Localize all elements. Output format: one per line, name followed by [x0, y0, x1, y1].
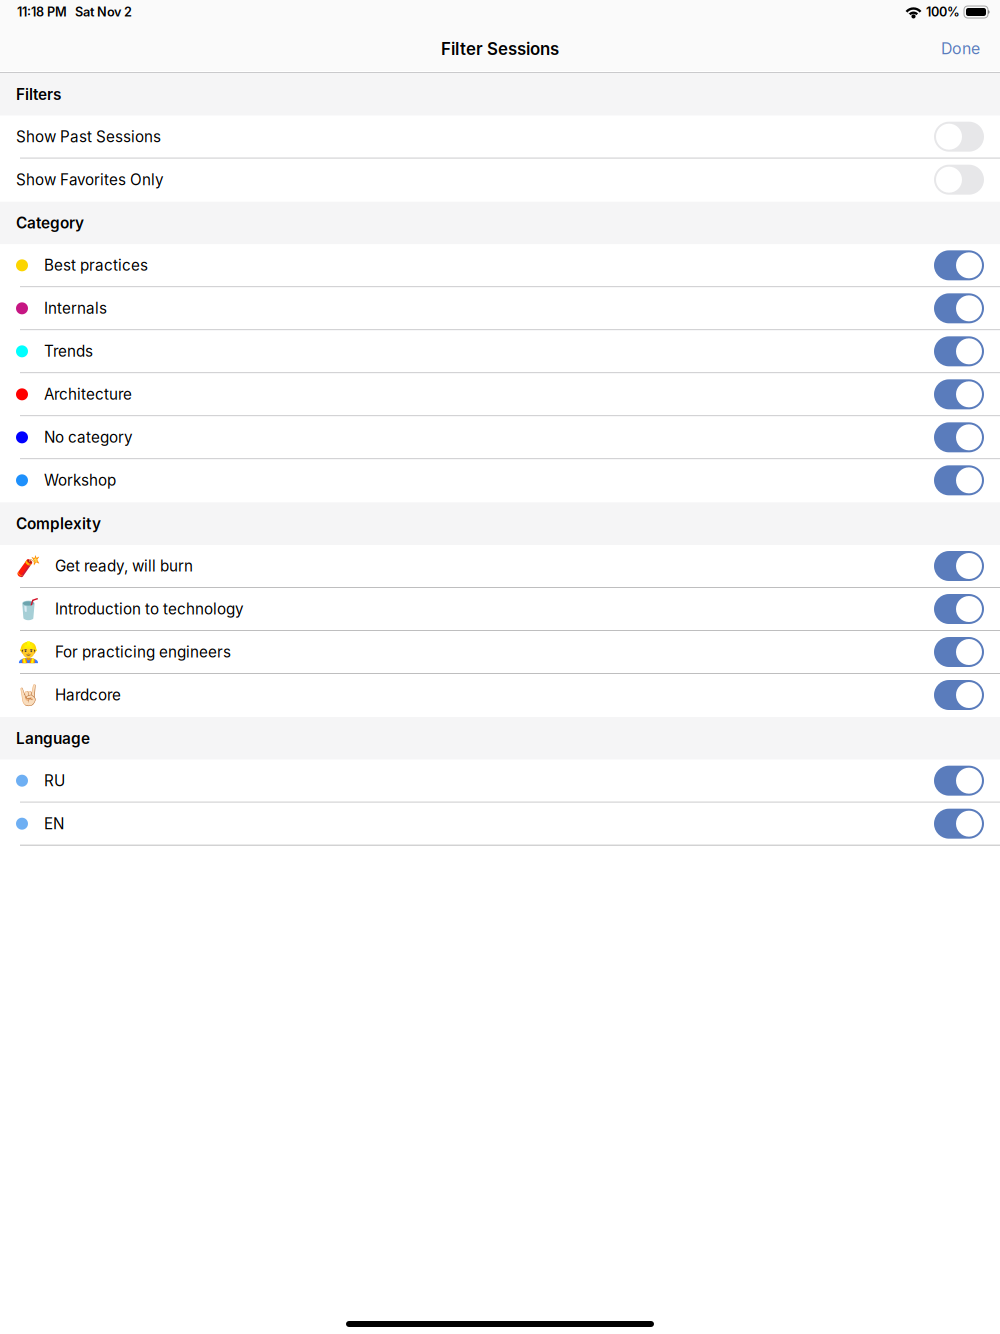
button[interactable]: Internals: [934, 293, 984, 323]
button[interactable]: Trends: [0, 330, 1000, 373]
staticText: 100%: [926, 4, 960, 20]
staticText: Introduction to technology: [55, 600, 244, 618]
staticText: RU: [44, 771, 65, 790]
staticText: Sat Nov 2: [75, 4, 132, 20]
button[interactable]: Trends: [934, 336, 984, 366]
staticText: Category: [16, 214, 84, 232]
staticText: 11:18 PM: [17, 4, 67, 20]
button[interactable]: Show Past Sessions: [0, 116, 1000, 159]
button[interactable]: Show Favorites Only: [934, 165, 984, 195]
staticText: Complexity: [16, 514, 101, 533]
button[interactable]: 🤘🏻: [0, 674, 1000, 717]
staticText: Done: [941, 39, 980, 58]
staticText: Trends: [44, 342, 93, 360]
button[interactable]: Introduction to technology: [934, 594, 984, 624]
button[interactable]: Workshop: [934, 465, 984, 495]
button[interactable]: Show Favorites Only: [0, 159, 1000, 202]
staticText: Show Past Sessions: [16, 127, 161, 146]
button[interactable]: Workshop: [0, 459, 1000, 502]
button[interactable]: Best practices: [0, 244, 1000, 287]
button[interactable]: RU: [0, 760, 1000, 803]
button[interactable]: Show Past Sessions: [934, 122, 984, 152]
staticText: Filters: [16, 85, 61, 104]
staticText: 🧨: [15, 554, 40, 578]
staticText: Best practices: [44, 256, 148, 274]
staticText: Language: [16, 729, 90, 748]
button[interactable]: RU: [934, 766, 984, 796]
button[interactable]: Internals: [0, 287, 1000, 330]
staticText: For practicing engineers: [55, 643, 231, 661]
staticText: Workshop: [44, 471, 116, 489]
button[interactable]: Best practices: [934, 250, 984, 280]
button[interactable]: Get ready, will burn: [934, 551, 984, 581]
button[interactable]: For practicing engineers: [934, 637, 984, 667]
button[interactable]: 🥤: [0, 588, 1000, 631]
staticText: Filter Sessions: [441, 39, 559, 59]
button[interactable]: Done: [921, 25, 1000, 70]
staticText: Architecture: [44, 385, 132, 403]
button[interactable]: EN: [0, 803, 1000, 846]
button[interactable]: EN: [934, 809, 984, 839]
staticText: EN: [44, 814, 64, 833]
staticText: Hardcore: [55, 686, 121, 704]
staticText: Get ready, will burn: [55, 557, 193, 575]
button[interactable]: Hardcore: [934, 680, 984, 710]
button[interactable]: 🧨: [0, 545, 1000, 588]
button[interactable]: No category: [934, 422, 984, 452]
staticText: Internals: [44, 299, 107, 317]
staticText: 🤘🏻: [15, 683, 40, 707]
button[interactable]: No category: [0, 416, 1000, 459]
button[interactable]: Architecture: [0, 373, 1000, 416]
staticText: No category: [44, 428, 133, 446]
staticText: 👷‍♂️: [15, 640, 40, 664]
button[interactable]: 👷‍♂️: [0, 631, 1000, 674]
staticText: 🥤: [15, 597, 40, 621]
button[interactable]: Architecture: [934, 379, 984, 409]
staticText: Show Favorites Only: [16, 170, 164, 189]
